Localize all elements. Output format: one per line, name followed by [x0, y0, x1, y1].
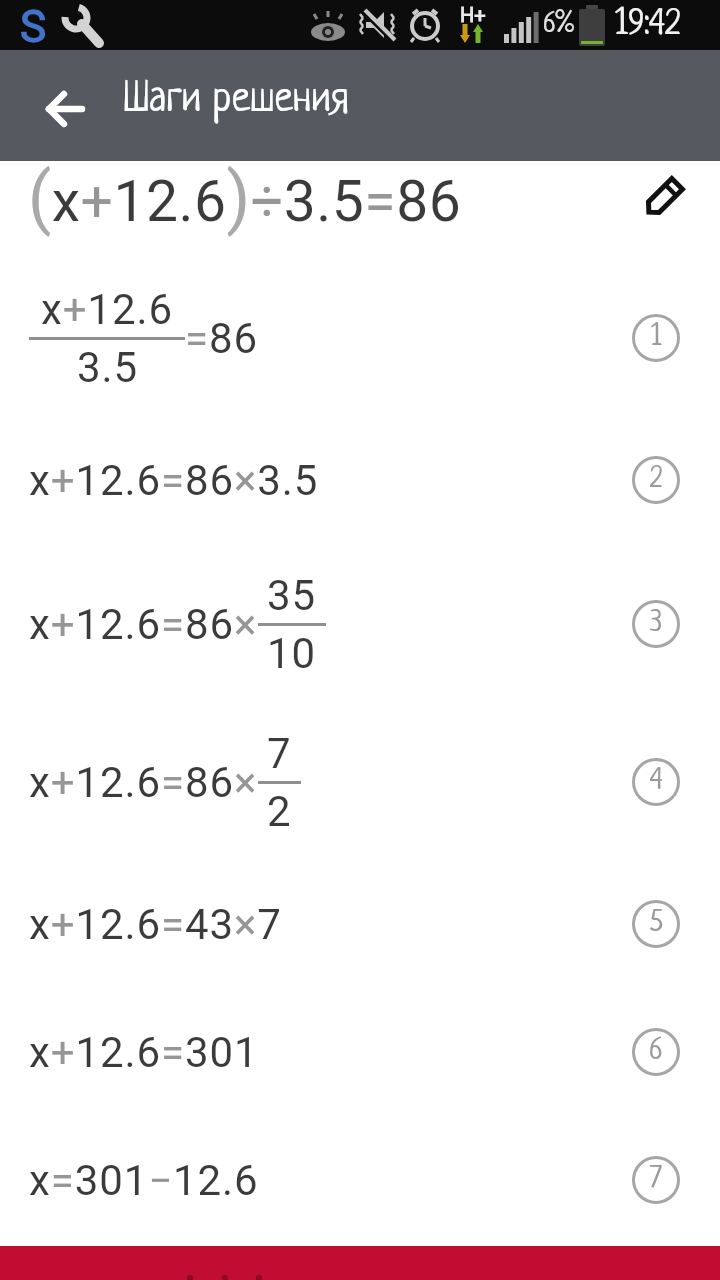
staticText: 35	[267, 571, 317, 620]
staticText: 2	[267, 787, 292, 836]
button[interactable]: 7	[632, 1156, 680, 1204]
button[interactable]: 6	[632, 1028, 680, 1076]
button[interactable]: 3	[632, 600, 680, 648]
button[interactable]: x+12.6=86×	[0, 564, 720, 684]
button[interactable]: (x+12.6)÷3.5=86	[0, 152, 720, 244]
button[interactable]: x+12.6=86×3.5	[0, 445, 720, 515]
staticText: 3.5	[77, 343, 138, 392]
staticText: x=301−12.6	[29, 1156, 259, 1205]
staticText: 7	[650, 1164, 662, 1196]
button[interactable]: 1	[632, 314, 680, 362]
button[interactable]: x+12.6=301	[0, 1017, 720, 1087]
staticText: 10	[267, 629, 317, 678]
staticText: 2	[650, 464, 662, 496]
staticText: 6	[649, 1036, 663, 1068]
button[interactable]: 5	[632, 900, 680, 948]
staticText: 1	[651, 322, 662, 354]
staticText: S	[20, 1, 47, 51]
staticText: x+12.6=301	[29, 1028, 259, 1077]
staticText: 6%	[543, 10, 574, 40]
button[interactable]	[37, 81, 93, 137]
staticText: 4	[650, 766, 663, 798]
staticText: 5	[650, 908, 663, 940]
staticText: H+	[460, 3, 486, 26]
staticText: x+12.6=43×7	[29, 900, 282, 949]
button[interactable]: 2	[632, 456, 680, 504]
button[interactable]: x+12.6=43×7	[0, 889, 720, 959]
button[interactable]: x+12.6=86×	[0, 722, 720, 842]
staticText: x+12.6=86×3.5	[29, 456, 319, 505]
button[interactable]: 4	[632, 758, 680, 806]
staticText: =86	[185, 314, 258, 363]
button[interactable]: x=301−12.6	[0, 1145, 720, 1215]
staticText: x+12.6=86×	[29, 758, 258, 807]
staticText: (x+12.6)÷3.5=86	[28, 158, 462, 238]
staticText: 3	[650, 608, 663, 640]
staticText: x+12.6	[41, 285, 173, 334]
staticText: 19:42	[615, 6, 680, 45]
staticText: 7	[267, 729, 292, 778]
button[interactable]: x+12.6	[0, 278, 720, 398]
button[interactable]	[639, 174, 687, 222]
staticText: x+12.6=86×	[29, 600, 258, 649]
staticText: Шаги решения	[123, 79, 349, 123]
